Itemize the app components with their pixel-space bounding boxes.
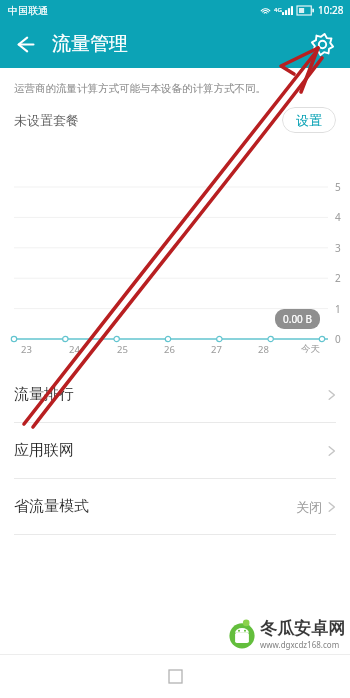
button[interactable]: 流量排行 bbox=[0, 367, 350, 422]
staticText: 0.00 B bbox=[283, 312, 312, 326]
staticText: 28 bbox=[258, 343, 269, 356]
button[interactable]: 应用联网 bbox=[0, 423, 350, 478]
staticText: 运营商的流量计算方式可能与本设备的计算方式不同。 bbox=[14, 82, 266, 95]
staticText: 省流量模式 bbox=[14, 497, 89, 516]
staticText: 0 bbox=[335, 332, 341, 346]
staticText: 应用联网 bbox=[14, 441, 74, 460]
staticText: 27 bbox=[211, 343, 222, 356]
staticText: 冬瓜安卓网 bbox=[260, 618, 345, 639]
staticText: 流量排行 bbox=[14, 385, 74, 404]
staticText: 设置 bbox=[296, 112, 322, 128]
staticText: 2 bbox=[335, 271, 341, 285]
staticText: 流量管理 bbox=[52, 32, 128, 56]
staticText: 今天 bbox=[301, 343, 320, 355]
button[interactable]: Home bbox=[157, 658, 193, 694]
staticText: 关闭 bbox=[296, 499, 322, 515]
button[interactable]: 设置 bbox=[282, 107, 336, 133]
staticText: 4G bbox=[274, 6, 282, 14]
button[interactable]: Settings bbox=[302, 24, 342, 64]
staticText: www.dgxcdz168.com bbox=[260, 639, 340, 650]
staticText: 10:28 bbox=[318, 3, 344, 17]
staticText: 25 bbox=[117, 343, 128, 356]
button[interactable]: 省流量模式 bbox=[0, 479, 350, 534]
staticText: 4 bbox=[335, 210, 341, 224]
staticText: 24 bbox=[69, 343, 80, 356]
staticText: 5 bbox=[335, 180, 341, 194]
staticText: 1 bbox=[335, 302, 341, 316]
staticText: 未设置套餐 bbox=[14, 112, 79, 128]
staticText: 中国联通 bbox=[8, 4, 48, 17]
staticText: 3 bbox=[335, 241, 341, 255]
staticText: 23 bbox=[21, 343, 32, 356]
staticText: 26 bbox=[164, 343, 175, 356]
button[interactable]: Back bbox=[5, 24, 45, 64]
